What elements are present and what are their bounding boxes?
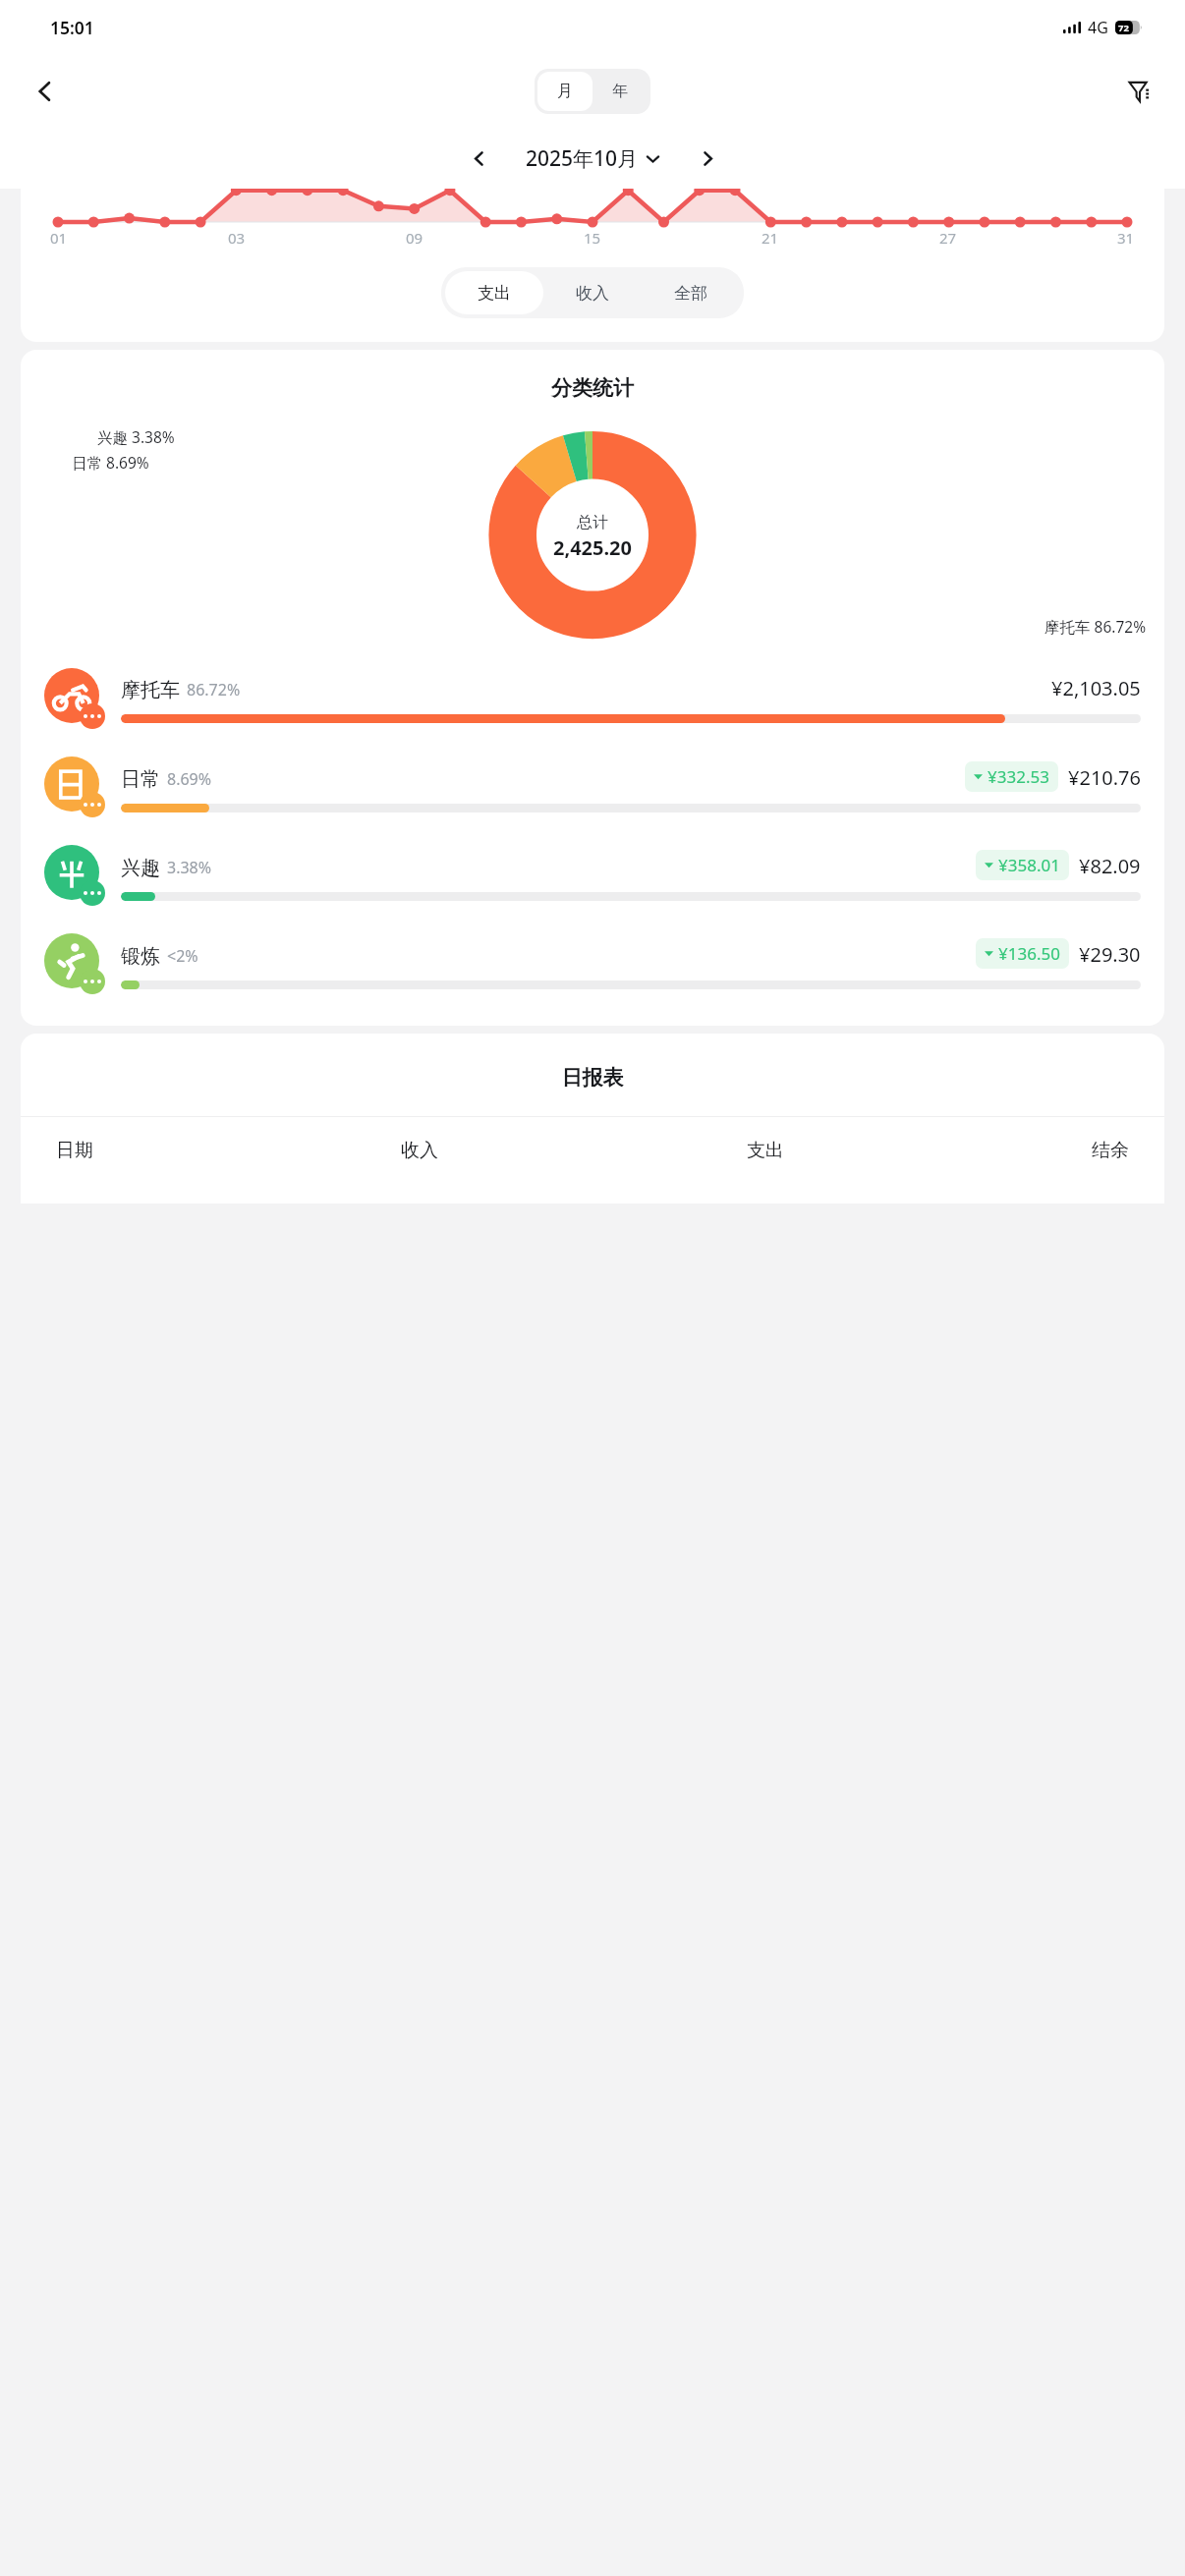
staticText: 15:01 <box>50 16 94 39</box>
staticText: 分类统计 <box>21 375 1164 401</box>
staticText: ¥332.53 <box>987 765 1049 788</box>
staticText: 收入 <box>576 283 609 304</box>
staticText: ¥29.30 <box>1079 941 1141 968</box>
staticText: 2,425.20 <box>553 534 632 561</box>
button[interactable]: Previous month <box>457 137 500 180</box>
staticText: 总计 <box>577 513 608 532</box>
staticText: 09 <box>406 228 423 248</box>
staticText: 日常 <box>121 767 160 792</box>
staticText: 15 <box>584 228 601 248</box>
staticText: 兴趣 3.38% <box>97 426 175 447</box>
staticText: ¥82.09 <box>1079 853 1141 879</box>
staticText: 4G <box>1088 17 1108 38</box>
staticText: 8.69% <box>167 768 212 790</box>
staticText: 全部 <box>674 283 707 304</box>
staticText: 结余 <box>1092 1139 1129 1162</box>
staticText: 日期 <box>56 1139 93 1162</box>
staticText: 兴趣 <box>121 856 160 880</box>
button[interactable]: 锻炼 <box>21 920 1164 1008</box>
staticText: 86.72% <box>187 679 241 700</box>
staticText: 年 <box>612 82 628 101</box>
button[interactable]: 支出 <box>445 271 543 314</box>
staticText: 日常 8.69% <box>72 452 149 473</box>
staticText: 支出 <box>478 283 511 304</box>
staticText: ¥136.50 <box>998 942 1060 965</box>
staticText: 锻炼 <box>121 944 160 969</box>
staticText: 摩托车 86.72% <box>1044 616 1147 637</box>
button[interactable]: Filter <box>1116 68 1163 115</box>
button[interactable]: 摩托车 <box>21 654 1164 743</box>
staticText: 月 <box>557 82 573 101</box>
staticText: 日报表 <box>21 1065 1164 1091</box>
button[interactable]: 全部 <box>642 271 740 314</box>
button[interactable]: 日常 <box>21 743 1164 831</box>
staticText: ¥2,103.05 <box>1051 675 1141 701</box>
button[interactable]: 月 <box>537 72 592 111</box>
staticText: 72 <box>1118 22 1129 34</box>
staticText: 21 <box>762 228 779 248</box>
staticText: 31 <box>1117 228 1135 248</box>
staticText: 收入 <box>401 1139 438 1162</box>
staticText: <2% <box>167 945 198 967</box>
button[interactable]: Back <box>22 68 69 115</box>
staticText: 摩托车 <box>121 678 180 702</box>
button[interactable]: 收入 <box>543 271 642 314</box>
staticText: 03 <box>228 228 246 248</box>
staticText: ¥210.76 <box>1068 764 1141 791</box>
staticText: 27 <box>939 228 957 248</box>
staticText: 支出 <box>747 1139 784 1162</box>
staticText: 3.38% <box>167 857 212 878</box>
staticText: 01 <box>50 228 68 248</box>
button[interactable]: 兴趣 <box>21 831 1164 920</box>
button[interactable]: Next month <box>686 137 729 180</box>
staticText: ¥358.01 <box>998 854 1060 876</box>
staticText: 2025年10月 <box>526 144 639 173</box>
button[interactable]: 2025年10月 <box>526 144 660 173</box>
button[interactable]: 年 <box>592 72 648 111</box>
